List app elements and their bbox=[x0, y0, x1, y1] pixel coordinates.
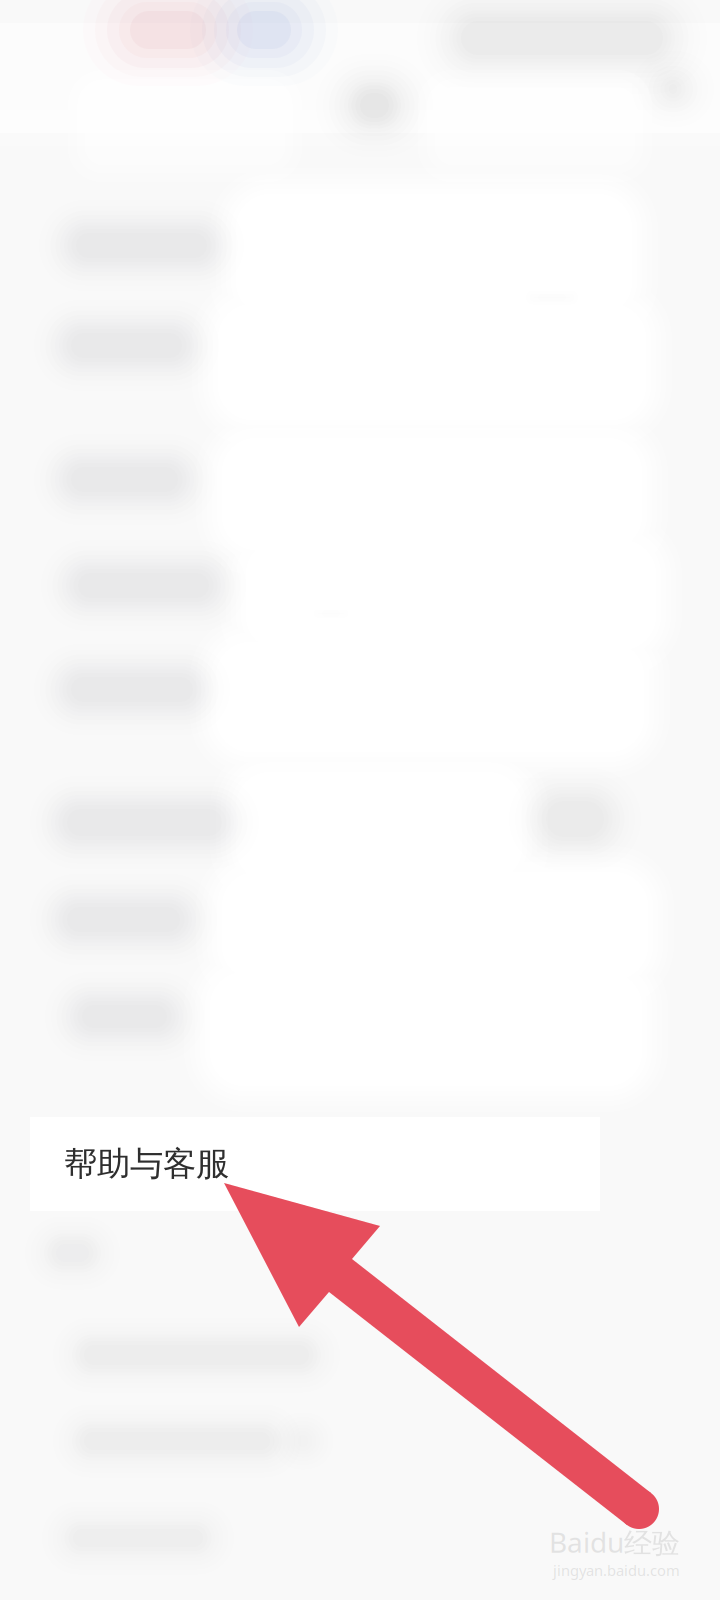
staticText: Baidu经验 bbox=[549, 1523, 680, 1560]
staticText: 帮助与客服 bbox=[64, 1143, 229, 1184]
staticText: jingyan.baidu.com bbox=[553, 1560, 680, 1580]
button[interactable]: 帮助与客服 bbox=[30, 1117, 600, 1211]
